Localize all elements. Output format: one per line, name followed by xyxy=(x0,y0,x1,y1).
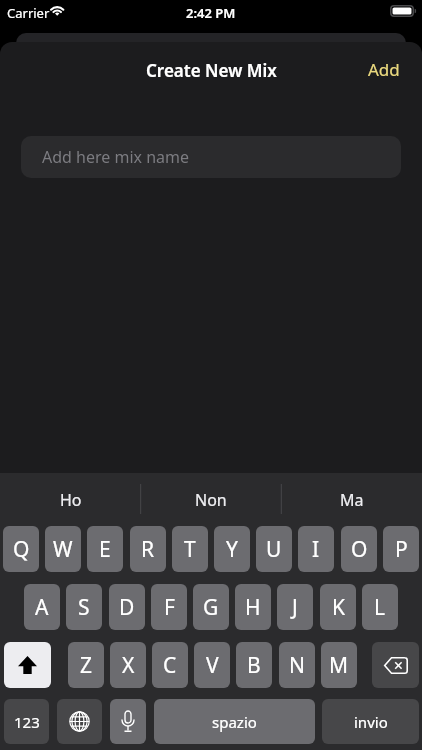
staticText: Ma xyxy=(340,489,364,511)
button[interactable]: N xyxy=(279,642,315,688)
button[interactable] xyxy=(110,699,146,744)
staticText: Add here mix name xyxy=(42,146,190,168)
button[interactable]: Non xyxy=(141,484,281,515)
button[interactable] xyxy=(4,642,51,688)
button[interactable]: R xyxy=(130,526,166,572)
staticText: E xyxy=(99,535,111,564)
staticText: W xyxy=(53,535,73,564)
button[interactable]: 123 xyxy=(4,699,49,744)
staticText: K xyxy=(332,593,345,622)
staticText: Create New Mix xyxy=(146,59,277,82)
button[interactable]: M xyxy=(321,642,357,688)
staticText: Add xyxy=(368,58,400,81)
staticText: V xyxy=(206,651,219,680)
staticText: 123 xyxy=(14,712,40,732)
button[interactable] xyxy=(57,699,102,744)
button[interactable]: J xyxy=(277,584,313,630)
button[interactable]: Y xyxy=(214,526,250,572)
button[interactable]: F xyxy=(151,584,187,630)
staticText: M xyxy=(329,651,349,680)
staticText: D xyxy=(119,593,135,622)
staticText: X xyxy=(122,651,135,680)
staticText: L xyxy=(374,593,386,622)
staticText: C xyxy=(163,651,177,680)
staticText: R xyxy=(141,535,155,564)
staticText: S xyxy=(78,593,90,622)
staticText: Z xyxy=(80,651,93,680)
button[interactable]: S xyxy=(66,584,102,630)
button[interactable]: T xyxy=(172,526,208,572)
staticText: A xyxy=(35,593,49,622)
button[interactable]: W xyxy=(45,526,81,572)
button[interactable]: V xyxy=(194,642,230,688)
button[interactable]: X xyxy=(110,642,146,688)
button[interactable]: D xyxy=(109,584,145,630)
staticText: Ho xyxy=(60,489,82,511)
staticText: Non xyxy=(195,489,227,511)
staticText: F xyxy=(164,593,175,622)
button[interactable]: H xyxy=(235,584,271,630)
staticText: Carrier xyxy=(7,4,50,22)
button[interactable]: Q xyxy=(3,526,39,572)
staticText: invio xyxy=(354,712,388,732)
staticText: Y xyxy=(226,535,238,564)
button[interactable]: Add xyxy=(360,50,408,89)
button[interactable]: O xyxy=(341,526,377,572)
button[interactable]: A xyxy=(24,584,60,630)
button[interactable]: B xyxy=(236,642,272,688)
button[interactable]: E xyxy=(87,526,123,572)
button[interactable]: Ho xyxy=(0,484,141,515)
staticText: U xyxy=(266,535,282,564)
staticText: Q xyxy=(13,535,30,564)
staticText: H xyxy=(245,593,261,622)
button[interactable]: Ma xyxy=(281,484,422,515)
button[interactable]: invio xyxy=(322,699,419,744)
button[interactable]: K xyxy=(320,584,356,630)
staticText: N xyxy=(289,651,305,680)
staticText: I xyxy=(312,535,320,564)
button[interactable]: Z xyxy=(68,642,104,688)
button[interactable]: L xyxy=(362,584,398,630)
button[interactable]: I xyxy=(298,526,334,572)
staticText: O xyxy=(351,535,368,564)
staticText: 2:42 PM xyxy=(186,4,236,22)
staticText: spazio xyxy=(212,712,257,732)
staticText: P xyxy=(395,535,408,564)
button[interactable]: U xyxy=(256,526,292,572)
button[interactable] xyxy=(372,642,419,688)
button[interactable]: G xyxy=(193,584,229,630)
button[interactable]: Add here mix name xyxy=(21,136,401,178)
staticText: J xyxy=(292,593,298,622)
button[interactable]: P xyxy=(383,526,419,572)
staticText: T xyxy=(184,535,196,564)
button[interactable]: C xyxy=(152,642,188,688)
staticText: G xyxy=(203,593,219,622)
staticText: B xyxy=(247,651,261,680)
button[interactable]: spazio xyxy=(154,699,315,744)
